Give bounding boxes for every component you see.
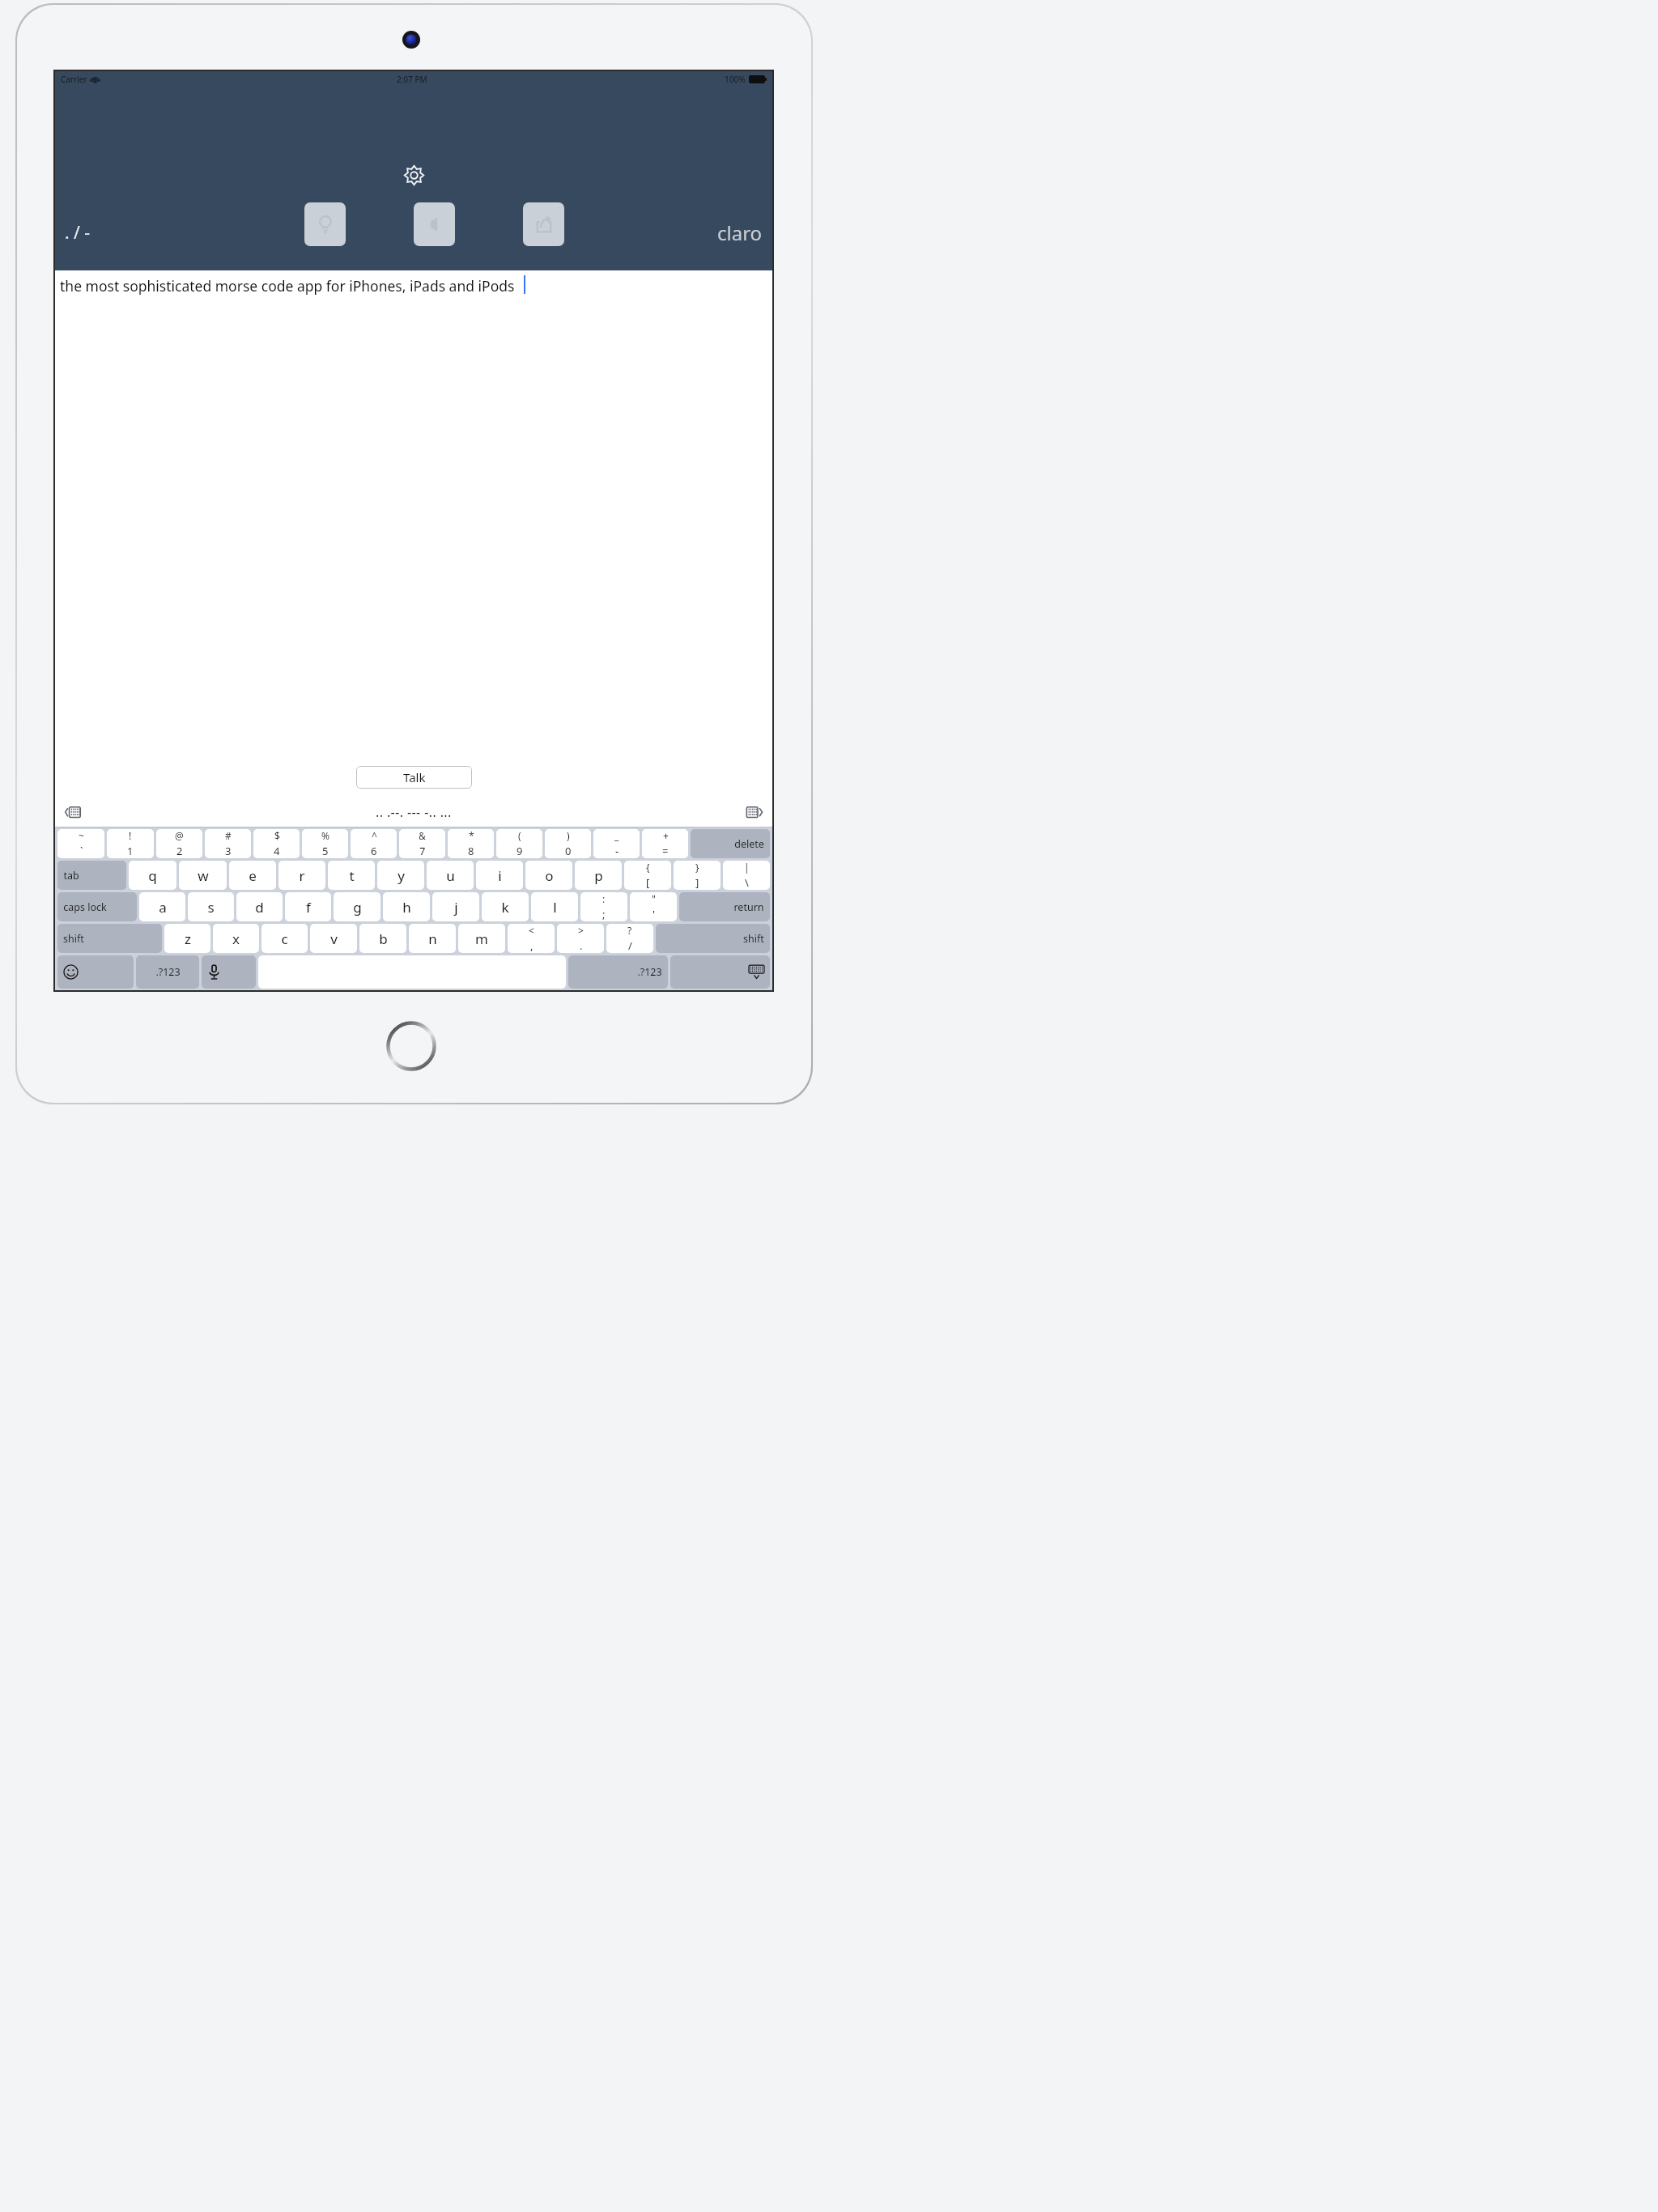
button[interactable]: p xyxy=(575,861,622,890)
button[interactable]: * xyxy=(448,829,494,858)
staticText: ( xyxy=(518,829,521,842)
staticText: .?123 xyxy=(637,965,662,979)
staticText: r xyxy=(299,866,305,885)
button[interactable]: ? xyxy=(606,924,653,953)
button[interactable]: } xyxy=(674,861,721,890)
button[interactable]: s xyxy=(188,892,234,921)
staticText: " xyxy=(652,892,656,905)
staticText: d xyxy=(255,898,264,917)
button[interactable]: " xyxy=(630,892,677,921)
staticText: q xyxy=(148,866,157,885)
button[interactable]: q xyxy=(129,861,176,890)
staticText: return xyxy=(733,900,764,914)
staticText: l xyxy=(553,898,557,917)
button[interactable]: . / - xyxy=(65,221,91,245)
button[interactable]: { xyxy=(624,861,671,890)
button[interactable]: ! xyxy=(107,829,154,858)
staticText: the most sophisticated morse code app fo… xyxy=(60,276,515,296)
button[interactable]: x xyxy=(213,924,259,953)
staticText: o xyxy=(545,866,554,885)
button[interactable]: a xyxy=(139,892,185,921)
button[interactable]: f xyxy=(285,892,331,921)
button[interactable]: # xyxy=(205,829,251,858)
button[interactable]: _ xyxy=(593,829,640,858)
button[interactable]: & xyxy=(399,829,445,858)
button[interactable]: r xyxy=(278,861,325,890)
button[interactable]: % xyxy=(302,829,348,858)
button[interactable]: caps lock xyxy=(57,892,137,921)
staticText: ) xyxy=(567,829,570,842)
staticText: ' xyxy=(653,907,655,921)
button[interactable]: Light xyxy=(304,202,346,246)
button[interactable]: Sound xyxy=(414,202,455,246)
staticText: $ xyxy=(274,829,280,842)
button[interactable]: Next field xyxy=(743,801,766,823)
staticText: c xyxy=(281,929,288,948)
button[interactable]: shift xyxy=(656,924,770,953)
button[interactable]: i xyxy=(476,861,523,890)
button[interactable]: y xyxy=(377,861,424,890)
staticText: u xyxy=(446,866,455,885)
button[interactable]: n xyxy=(409,924,456,953)
button[interactable]: ( xyxy=(496,829,542,858)
staticText: h xyxy=(402,898,411,917)
staticText: shift xyxy=(743,932,764,946)
other: emoji xyxy=(63,964,79,980)
button[interactable]: .?123 xyxy=(136,955,199,989)
button[interactable]: return xyxy=(679,892,770,921)
button[interactable]: | xyxy=(723,861,770,890)
staticText: | xyxy=(744,861,750,874)
button[interactable]: o xyxy=(525,861,572,890)
staticText: Carrier xyxy=(61,74,87,85)
button[interactable]: Share xyxy=(523,202,564,246)
button[interactable]: ) xyxy=(545,829,591,858)
button[interactable]: t xyxy=(328,861,375,890)
button[interactable]: h xyxy=(383,892,430,921)
button[interactable]: l xyxy=(531,892,578,921)
other: mic xyxy=(207,965,221,979)
staticText: 5 xyxy=(322,844,329,858)
staticText: 0 xyxy=(565,844,572,858)
staticText: a xyxy=(159,898,167,917)
button[interactable]: mic xyxy=(202,955,256,989)
button[interactable]: hide xyxy=(670,955,770,989)
button[interactable]: < xyxy=(508,924,555,953)
button[interactable]: d xyxy=(236,892,283,921)
button[interactable]: @ xyxy=(156,829,202,858)
staticText: i xyxy=(498,866,502,885)
button[interactable]: $ xyxy=(253,829,300,858)
button[interactable]: b xyxy=(359,924,406,953)
button[interactable]: delete xyxy=(691,829,770,858)
button[interactable]: e xyxy=(229,861,276,890)
staticText: 2:07 PM xyxy=(397,74,427,85)
button[interactable]: ^ xyxy=(351,829,397,858)
button[interactable]: c xyxy=(261,924,308,953)
button[interactable]: m xyxy=(458,924,505,953)
staticText: tab xyxy=(63,869,79,883)
button[interactable]: + xyxy=(642,829,688,858)
button[interactable]: shift xyxy=(57,924,162,953)
button[interactable]: g xyxy=(334,892,380,921)
button[interactable]: emoji xyxy=(57,955,134,989)
button[interactable]: w xyxy=(179,861,227,890)
button[interactable]: k xyxy=(482,892,529,921)
staticText: k xyxy=(501,898,509,917)
button[interactable]: Previous field xyxy=(62,801,84,823)
button[interactable]: Talk xyxy=(356,766,472,789)
staticText: [ xyxy=(646,875,650,890)
button[interactable]: Settings xyxy=(399,160,428,189)
button[interactable]: z xyxy=(164,924,210,953)
button[interactable]: > xyxy=(557,924,604,953)
staticText: \ xyxy=(745,875,749,890)
button[interactable]: u xyxy=(427,861,474,890)
staticText: = xyxy=(662,844,669,858)
button[interactable]: ~ xyxy=(57,829,104,858)
staticText: ^ xyxy=(372,829,377,842)
button[interactable] xyxy=(258,955,566,989)
staticText: 7 xyxy=(419,844,426,858)
button[interactable]: .?123 xyxy=(568,955,668,989)
button[interactable]: j xyxy=(432,892,479,921)
button[interactable]: tab xyxy=(57,861,126,890)
button[interactable]: v xyxy=(310,924,357,953)
button[interactable]: : xyxy=(580,892,627,921)
